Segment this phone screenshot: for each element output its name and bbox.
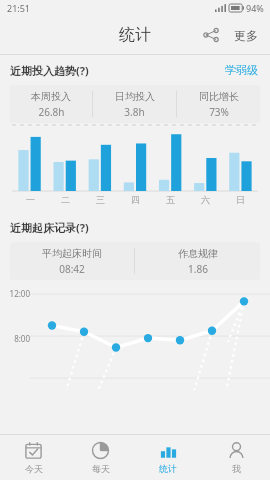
staticText: 近期投入趋势(?) [10, 63, 89, 78]
staticText: 73% [209, 105, 229, 119]
staticText: 更多 [234, 28, 258, 43]
staticText: 日均投入 [115, 90, 155, 103]
button[interactable]: 我 [202, 435, 270, 480]
staticText: 统计 [119, 25, 151, 45]
button[interactable]: 更多 [232, 24, 260, 47]
staticText: 本周投入 [31, 90, 71, 103]
staticText: 统计 [159, 463, 177, 474]
staticText: 四 [131, 194, 140, 205]
staticText: 21:51 [7, 2, 31, 14]
staticText: 日 [236, 194, 245, 205]
button[interactable]: 学弱级 [223, 61, 260, 79]
staticText: 12:00 [0, 288, 30, 299]
staticText: 每天 [92, 463, 110, 474]
staticText: 作息规律 [178, 247, 218, 260]
staticText: 08:42 [59, 262, 85, 276]
staticText: 一 [26, 194, 35, 205]
staticText: 8:00 [0, 333, 30, 344]
staticText: 学弱级 [225, 63, 258, 77]
staticText: 三 [96, 194, 105, 205]
staticText: 94% [246, 2, 264, 14]
staticText: 今天 [25, 463, 43, 474]
staticText: 3.8h [124, 105, 145, 119]
staticText: 平均起床时间 [42, 247, 102, 260]
staticText: 我 [232, 463, 241, 474]
staticText: 同比增长 [199, 90, 239, 103]
button[interactable]: 今天 [0, 435, 67, 480]
staticText: 近期起床记录(?) [10, 220, 89, 235]
staticText: 二 [61, 194, 70, 205]
staticText: 26.8h [38, 105, 65, 119]
staticText: 1.86 [188, 262, 208, 276]
button[interactable]: 统计 [134, 435, 202, 480]
staticText: 六 [201, 194, 210, 205]
staticText: 五 [166, 194, 175, 205]
button[interactable]: 每天 [67, 435, 134, 480]
button[interactable]: Share [198, 22, 224, 48]
